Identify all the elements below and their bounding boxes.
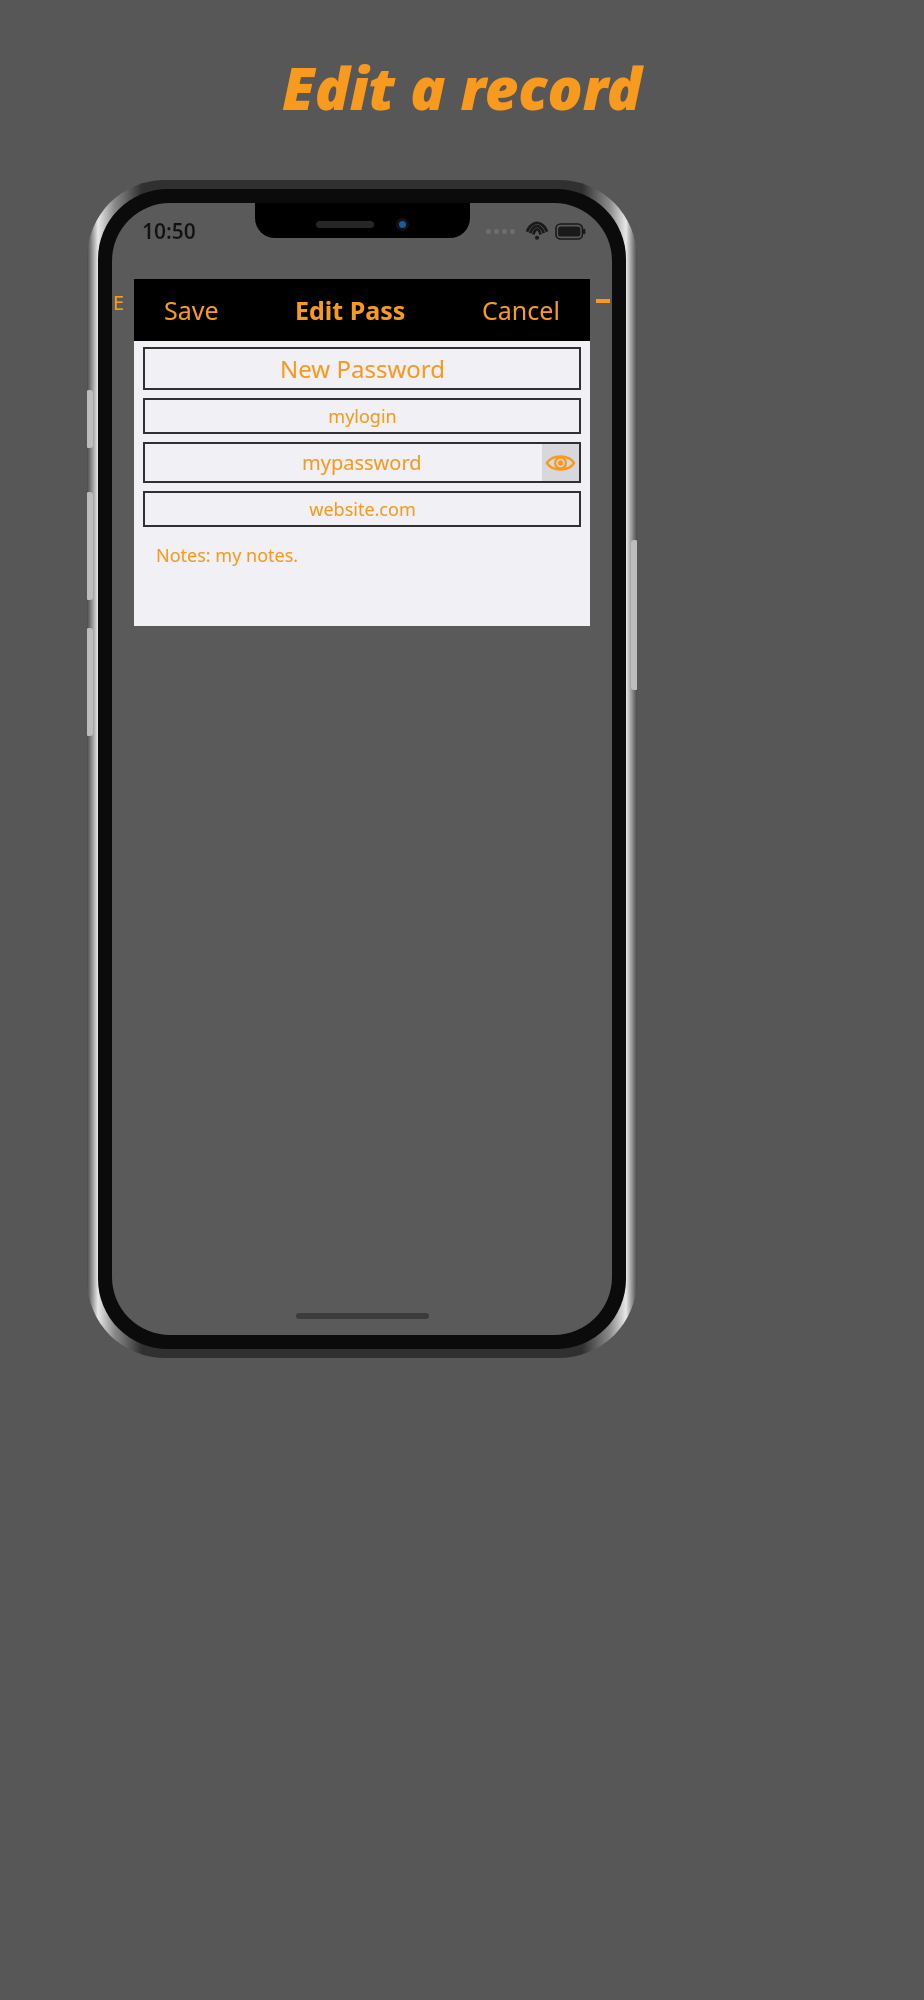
staticText: Notes: my notes. <box>156 543 299 568</box>
staticText: New Password <box>280 352 445 385</box>
button[interactable]: mypassword <box>143 442 581 483</box>
button[interactable]: Notes: my notes. <box>143 541 581 620</box>
staticText: E <box>113 289 125 316</box>
staticText: Edit a record <box>282 48 642 127</box>
button[interactable]: mylogin <box>143 398 581 434</box>
staticText: 10:50 <box>142 217 196 246</box>
staticText: website.com <box>309 497 416 522</box>
staticText: Edit Pass <box>295 293 406 327</box>
button[interactable]: Show password <box>542 444 579 481</box>
button[interactable]: Save <box>156 287 227 333</box>
staticText: mypassword <box>302 449 422 476</box>
button[interactable]: Edit Pass <box>287 287 414 333</box>
staticText: Save <box>164 293 219 327</box>
staticText: mylogin <box>328 404 397 429</box>
button[interactable]: website.com <box>143 491 581 527</box>
button[interactable]: Cancel <box>474 287 568 333</box>
staticText: Cancel <box>482 293 560 327</box>
button[interactable]: New Password <box>143 347 581 390</box>
